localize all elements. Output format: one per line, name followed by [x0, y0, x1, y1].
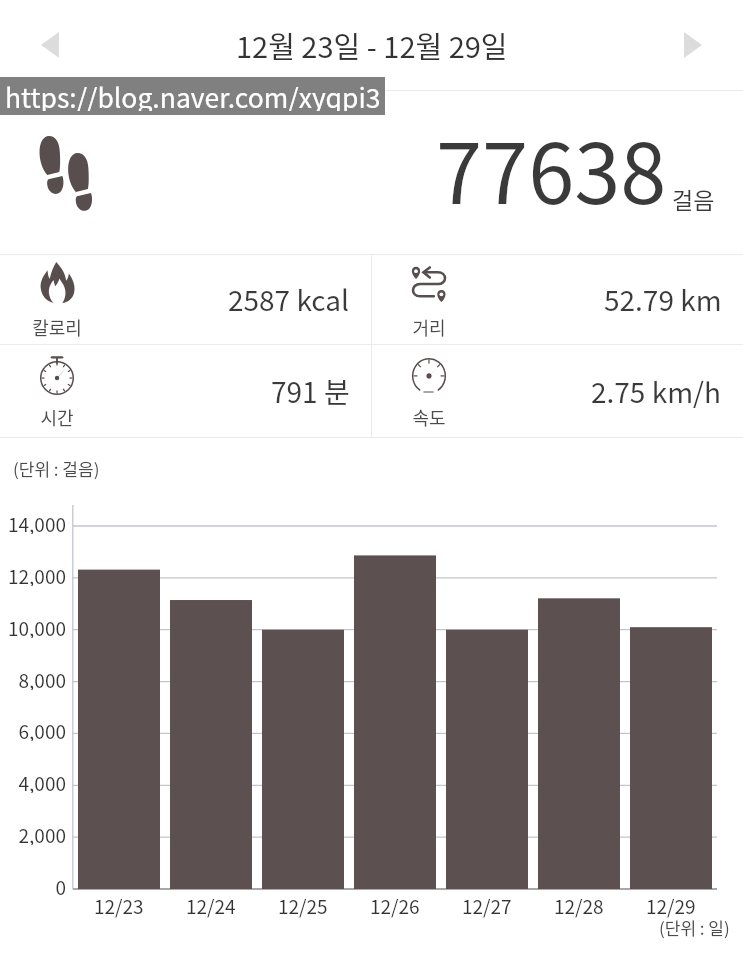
staticText: 10,000 — [7, 614, 66, 638]
staticText: 걸음 — [672, 182, 715, 215]
staticText: 12/26 — [370, 892, 420, 918]
staticText: 14,000 — [7, 510, 66, 534]
staticText: 2,000 — [18, 821, 66, 845]
staticText: 12월 23일 - 12월 29일 — [236, 24, 508, 66]
staticText: 791 분 — [271, 371, 350, 412]
staticText: 2587 kcal — [228, 279, 350, 320]
button[interactable]: 시간 — [0, 345, 371, 437]
staticText: 칼로리 — [32, 314, 82, 340]
button[interactable]: 속도 — [372, 345, 743, 437]
staticText: 8,000 — [18, 666, 66, 690]
staticText: 거리 — [412, 314, 446, 340]
staticText: 12/29 — [646, 892, 696, 918]
button[interactable]: Next week — [643, 0, 743, 90]
button[interactable]: Previous week — [0, 0, 100, 90]
staticText: (단위 : 걸음) — [13, 456, 100, 481]
staticText: 12/25 — [278, 892, 328, 918]
staticText: 4,000 — [18, 769, 66, 793]
staticText: (단위 : 일) — [659, 915, 730, 940]
staticText: 속도 — [412, 404, 446, 430]
staticText: 12/28 — [554, 892, 604, 918]
staticText: 77638 — [436, 108, 667, 228]
staticText: https://blog.naver.com/xyqpi3 — [5, 77, 381, 111]
button[interactable]: 거리 — [372, 255, 743, 344]
staticText: 6,000 — [18, 717, 66, 741]
staticText: 12/24 — [186, 892, 236, 918]
staticText: 12,000 — [7, 562, 66, 586]
staticText: 2.75 km/h — [591, 371, 722, 412]
staticText: 12/23 — [94, 892, 144, 918]
staticText: 0 — [55, 873, 66, 897]
staticText: 12/27 — [462, 892, 512, 918]
staticText: 52.79 km — [604, 279, 722, 320]
button[interactable]: 칼로리 — [0, 255, 371, 344]
staticText: 시간 — [40, 404, 74, 430]
